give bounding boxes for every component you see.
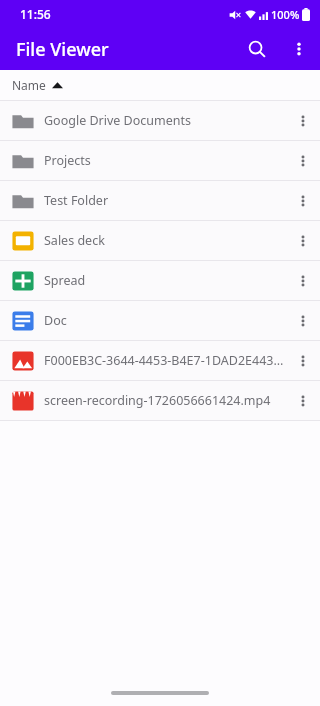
button[interactable]: Item options bbox=[286, 301, 320, 340]
staticText: Projects bbox=[44, 152, 286, 169]
button[interactable]: Item options bbox=[286, 261, 320, 300]
button[interactable]: Item options bbox=[286, 341, 320, 380]
staticText: Test Folder bbox=[44, 192, 286, 209]
button[interactable]: screen-recording-1726056661424.mp4 bbox=[0, 381, 320, 420]
button[interactable]: Item options bbox=[286, 221, 320, 260]
staticText: File Viewer bbox=[16, 37, 109, 62]
staticText: Name bbox=[12, 77, 46, 93]
button[interactable]: More options bbox=[278, 28, 320, 70]
staticText: Spread bbox=[44, 272, 286, 289]
button[interactable]: Item options bbox=[286, 101, 320, 140]
button[interactable]: Test Folder bbox=[0, 181, 320, 220]
staticText: 11:56 bbox=[20, 6, 51, 22]
button[interactable]: Item options bbox=[286, 381, 320, 420]
button[interactable]: Google Drive Documents bbox=[0, 101, 320, 140]
button[interactable]: Doc bbox=[0, 301, 320, 340]
staticText: Google Drive Documents bbox=[44, 112, 286, 129]
button[interactable]: F000EB3C-3644-4453-B4E7-1DAD2E44314… bbox=[0, 341, 320, 380]
button[interactable]: Projects bbox=[0, 141, 320, 180]
button[interactable]: Item options bbox=[286, 181, 320, 220]
staticText: Doc bbox=[44, 312, 286, 329]
staticText: Sales deck bbox=[44, 232, 286, 249]
button[interactable]: Search bbox=[236, 28, 278, 70]
button[interactable]: Sales deck bbox=[0, 221, 320, 260]
button[interactable]: Name bbox=[0, 70, 320, 100]
staticText: screen-recording-1726056661424.mp4 bbox=[44, 392, 286, 409]
button[interactable]: Spread bbox=[0, 261, 320, 300]
staticText: 100% bbox=[271, 7, 300, 22]
button[interactable]: Item options bbox=[286, 141, 320, 180]
staticText: F000EB3C-3644-4453-B4E7-1DAD2E44314… bbox=[44, 352, 286, 369]
